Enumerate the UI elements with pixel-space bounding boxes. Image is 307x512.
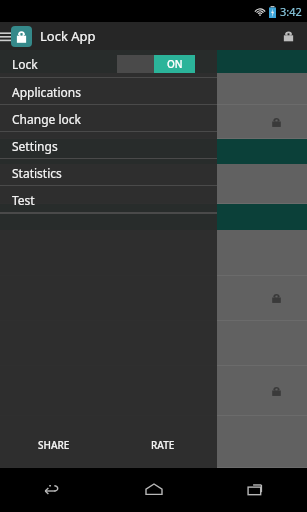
- staticText: Change lock: [12, 111, 81, 127]
- button[interactable]: Back: [0, 468, 103, 512]
- staticText: ON: [167, 57, 183, 71]
- staticText: Lock App: [40, 27, 96, 45]
- button[interactable]: RATE: [108, 428, 217, 462]
- button[interactable]: Lock: [277, 25, 299, 47]
- button[interactable]: [0, 105, 307, 139]
- staticText: Lock: [12, 56, 38, 72]
- staticText: Statistics: [12, 165, 62, 181]
- staticText: 3:42: [280, 4, 302, 19]
- button[interactable]: Test: [0, 186, 217, 213]
- button[interactable]: Settings: [0, 132, 217, 159]
- button[interactable]: SHARE: [0, 428, 108, 462]
- button[interactable]: Home: [103, 468, 205, 512]
- staticText: Settings: [12, 138, 58, 154]
- staticText: SHARE: [38, 438, 70, 452]
- button[interactable]: Recent apps: [205, 468, 307, 512]
- button[interactable]: [0, 366, 307, 416]
- button[interactable]: Statistics: [0, 159, 217, 186]
- button[interactable]: [0, 73, 307, 105]
- button[interactable]: [0, 230, 307, 276]
- staticText: Test: [12, 192, 35, 208]
- staticText: Applications: [12, 84, 81, 100]
- button[interactable]: Applications: [0, 78, 217, 105]
- button[interactable]: [0, 416, 307, 468]
- button[interactable]: [0, 321, 307, 366]
- button[interactable]: Open navigation drawer: [0, 26, 14, 46]
- button[interactable]: [0, 276, 307, 321]
- button[interactable]: Lock: [0, 50, 217, 78]
- button[interactable]: Change lock: [0, 105, 217, 132]
- button[interactable]: [0, 164, 307, 204]
- staticText: RATE: [151, 438, 175, 452]
